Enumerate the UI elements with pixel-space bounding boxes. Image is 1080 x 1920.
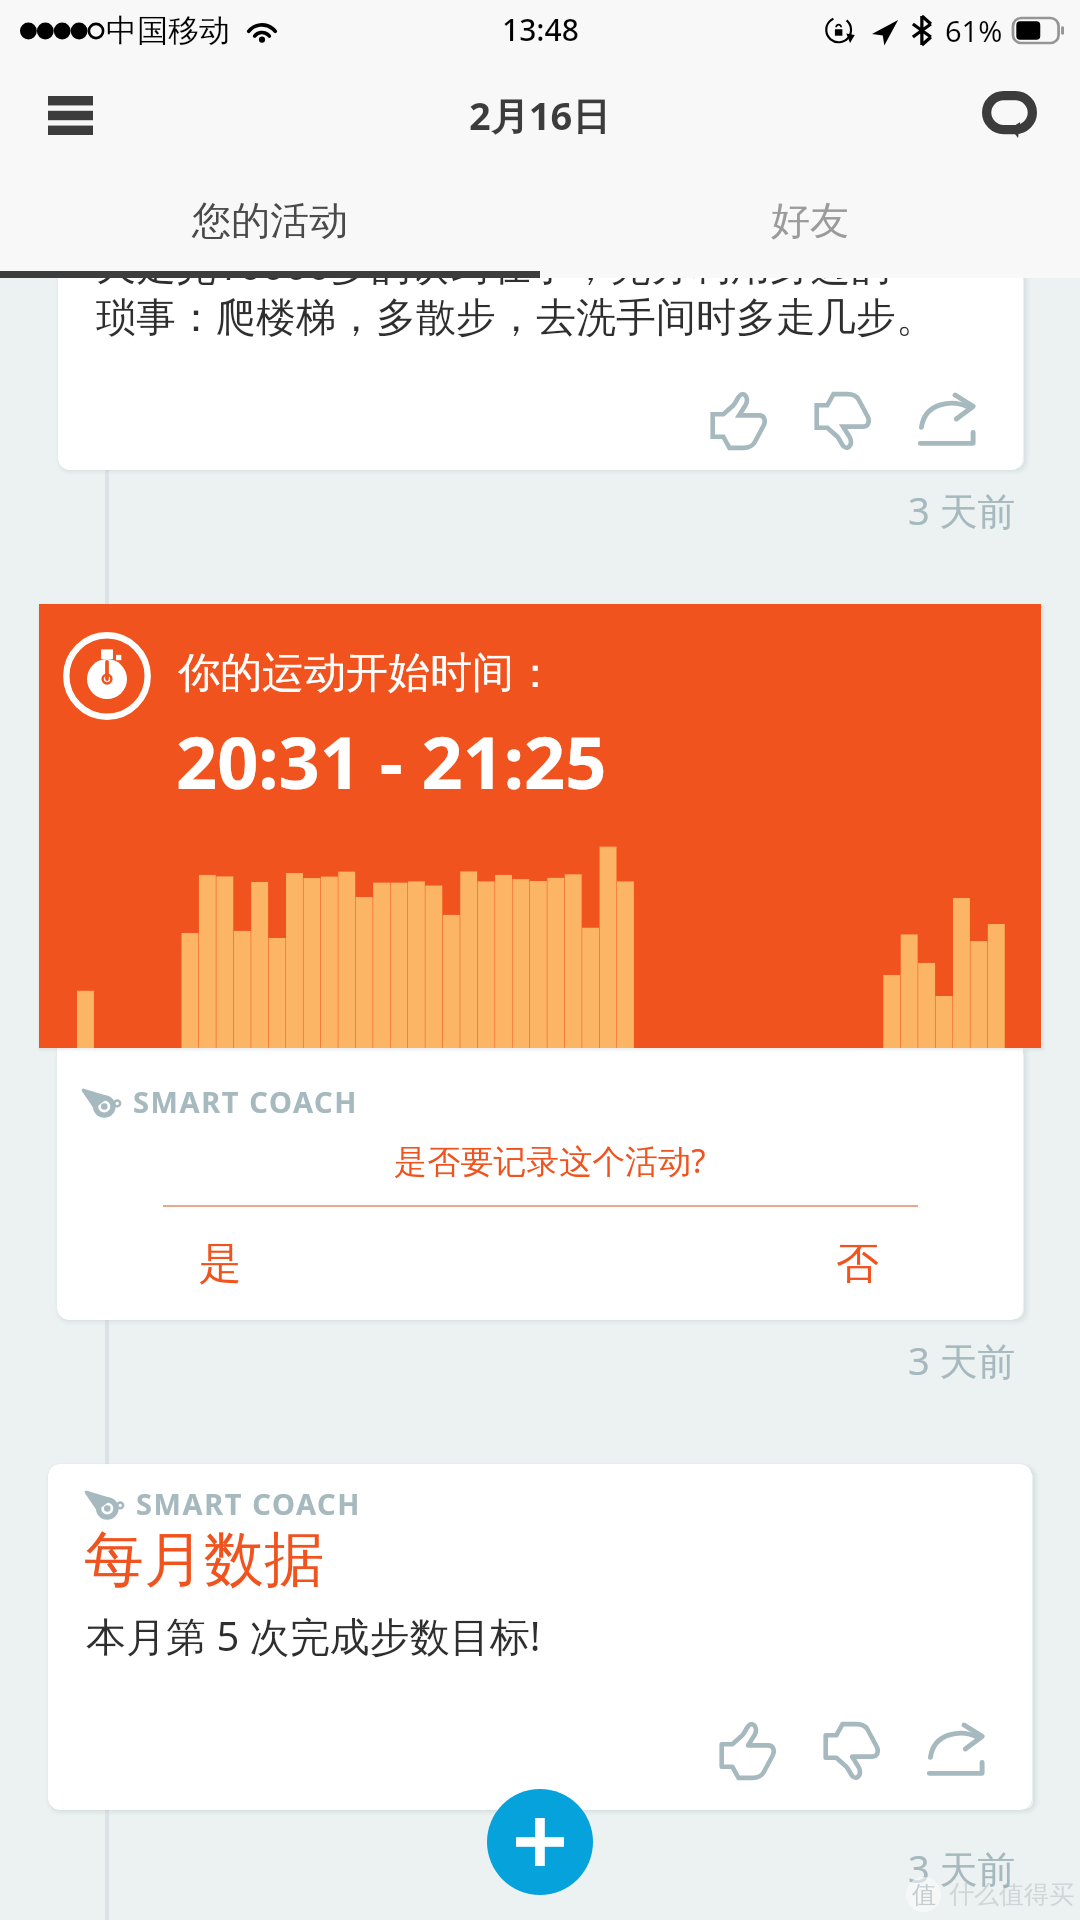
staticText: 3 天前 — [908, 1842, 1016, 1894]
staticText: 3 天前 — [908, 1334, 1016, 1386]
button[interactable]: 你的运动开始时间： — [39, 604, 1041, 1048]
staticText: 3 天前 — [908, 484, 1016, 536]
button[interactable]: Messages — [971, 77, 1047, 153]
button[interactable]: SMART COACH — [48, 1464, 1032, 1810]
staticText: 20:31 - 21:25 — [176, 712, 607, 810]
staticText: 什么值得买 — [949, 1879, 1074, 1910]
staticText: 2月16日 — [469, 89, 611, 141]
staticText: 琐事：爬楼梯，多散步，去洗手间时多走几步。 — [96, 292, 936, 342]
staticText: 是否要记录这个活动? — [67, 1138, 1023, 1183]
staticText: 否 — [836, 1237, 879, 1291]
button[interactable]: Dislike — [791, 378, 895, 464]
staticText: 61% — [945, 11, 1003, 50]
button[interactable]: 否 — [757, 1226, 887, 1302]
staticText: SMART COACH — [136, 1484, 361, 1523]
button[interactable]: Like — [696, 1708, 800, 1794]
button[interactable]: 您的活动 — [0, 170, 540, 278]
button[interactable]: Share — [895, 378, 999, 464]
staticText: 本月第 5 次完成步数目标! — [86, 1608, 541, 1663]
button[interactable]: Add — [487, 1789, 593, 1895]
staticText: 13:48 — [502, 9, 579, 50]
staticText: SMART COACH — [133, 1082, 358, 1121]
button[interactable]: 天走完10000多的诀窍在于，充分利用身边的 — [58, 272, 1023, 470]
staticText: 值 — [912, 1880, 936, 1910]
button[interactable]: 是 — [177, 1226, 307, 1302]
button[interactable]: Dislike — [800, 1708, 904, 1794]
staticText: 是 — [199, 1237, 242, 1291]
staticText: 天走完10000多的诀窍在于，充分利用身边的 — [96, 272, 891, 292]
staticText: 好友 — [771, 196, 849, 245]
staticText: 你的运动开始时间： — [178, 647, 556, 700]
button[interactable]: Menu — [32, 77, 108, 153]
staticText: 中国移动 — [106, 11, 230, 50]
staticText: 每月数据 — [84, 1522, 324, 1598]
button[interactable]: Like — [687, 378, 791, 464]
button[interactable]: 好友 — [540, 170, 1080, 278]
staticText: 您的活动 — [192, 196, 348, 245]
button[interactable]: Share — [904, 1708, 1008, 1794]
